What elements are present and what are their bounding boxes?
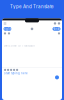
button[interactable]: Translate <box>55 75 59 79</box>
staticText: Start typing here <box>4 72 28 75</box>
staticText: Hindi <box>52 27 60 31</box>
staticText: Type And Translate <box>10 4 54 9</box>
button[interactable]: English <box>3 27 11 31</box>
button[interactable]: History <box>53 21 57 25</box>
staticText: Welcome to Translator <box>4 44 35 47</box>
button[interactable]: Hindi <box>52 27 60 31</box>
button[interactable]: Swap languages <box>29 27 34 31</box>
staticText: English <box>2 27 13 31</box>
button[interactable]: Settings <box>57 21 61 25</box>
button[interactable]: Menu <box>3 21 7 25</box>
